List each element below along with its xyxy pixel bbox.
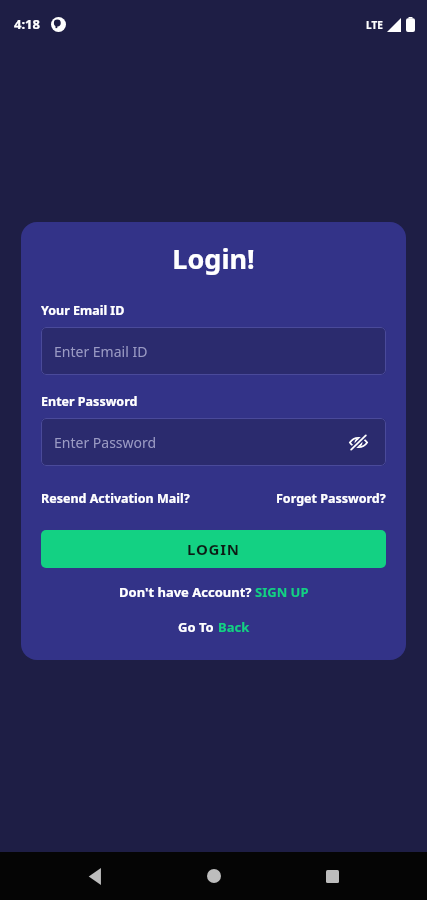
staticText: 4:18 [14, 15, 40, 33]
button[interactable]: Resend Activation Mail? [41, 488, 190, 509]
staticText: LOGIN [187, 539, 240, 559]
button[interactable]: Enter Password [41, 418, 386, 466]
staticText: Enter Email ID [54, 342, 148, 361]
staticText: Enter Password [54, 433, 157, 452]
button[interactable]: Forget Password? [276, 488, 386, 509]
staticText: LTE [366, 18, 383, 32]
staticText: Login! [41, 240, 386, 277]
button[interactable]: Enter Email ID [41, 327, 386, 375]
button[interactable]: Recent apps [308, 852, 356, 900]
staticText: Resend Activation Mail? [41, 490, 190, 507]
staticText: Don't have Account? [119, 583, 255, 601]
staticText: Back [218, 618, 250, 636]
button[interactable]: Home [190, 852, 238, 900]
button[interactable]: LOGIN [41, 530, 386, 568]
staticText: Go To [178, 618, 218, 636]
staticText: Enter Password [41, 393, 138, 410]
button[interactable]: Don't have Account? [117, 581, 311, 603]
staticText: SIGN UP [255, 583, 309, 601]
button[interactable]: Back [71, 852, 119, 900]
button[interactable]: Toggle password visibility [343, 427, 373, 457]
button[interactable]: Go To [176, 616, 252, 638]
staticText: Your Email ID [41, 302, 125, 319]
staticText: Forget Password? [276, 490, 386, 507]
